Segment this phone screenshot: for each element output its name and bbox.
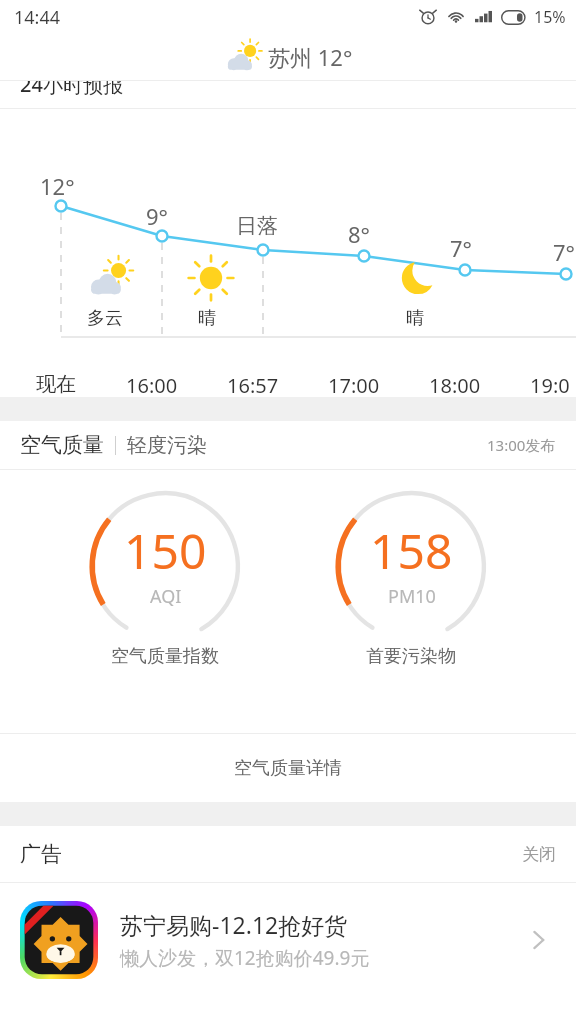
staticText: 8°	[348, 219, 371, 249]
staticText: 苏宁易购-12.12抢好货	[120, 909, 348, 940]
staticText: 日落	[236, 213, 278, 239]
staticText: 18:00	[429, 372, 481, 399]
staticText: 15%	[534, 6, 566, 28]
staticText: 空气质量详情	[234, 757, 342, 780]
button[interactable]: 空气质量详情	[0, 734, 576, 802]
staticText: 懒人沙发，双12抢购价49.9元	[120, 945, 370, 971]
staticText: 17:00	[328, 372, 380, 399]
staticText: PM10	[388, 584, 436, 609]
staticText: 158	[370, 518, 453, 583]
staticText: 苏州 12°	[268, 42, 353, 72]
staticText: 24小时预报	[20, 81, 123, 98]
other: Open ad	[526, 925, 556, 955]
staticText: 150	[124, 518, 207, 583]
staticText: 广告	[20, 841, 62, 867]
staticText: 晴	[198, 307, 216, 330]
staticText: 轻度污染	[127, 433, 207, 458]
staticText: 关闭	[522, 844, 556, 865]
staticText: 12°	[40, 171, 75, 201]
staticText: 19:0	[530, 372, 570, 399]
staticText: 现在	[36, 372, 76, 397]
staticText: 多云	[87, 307, 123, 330]
button[interactable]: 关闭	[502, 832, 576, 877]
staticText: 7°	[450, 233, 473, 263]
staticText: 空气质量	[20, 432, 104, 458]
staticText: 7°	[553, 237, 576, 267]
staticText: 9°	[146, 201, 169, 231]
staticText: 14:44	[14, 5, 61, 30]
staticText: 13:00发布	[487, 435, 556, 455]
staticText: AQI	[150, 584, 182, 609]
staticText: 晴	[406, 307, 424, 330]
button[interactable]: 12°	[0, 109, 576, 397]
staticText: 16:00	[126, 372, 178, 399]
button[interactable]: 苏宁易购-12.12抢好货	[0, 883, 576, 997]
button[interactable]: 苏州 12°	[215, 36, 361, 78]
staticText: 空气质量指数	[111, 645, 219, 668]
staticText: 首要污染物	[366, 645, 456, 668]
staticText: 16:57	[227, 372, 279, 399]
